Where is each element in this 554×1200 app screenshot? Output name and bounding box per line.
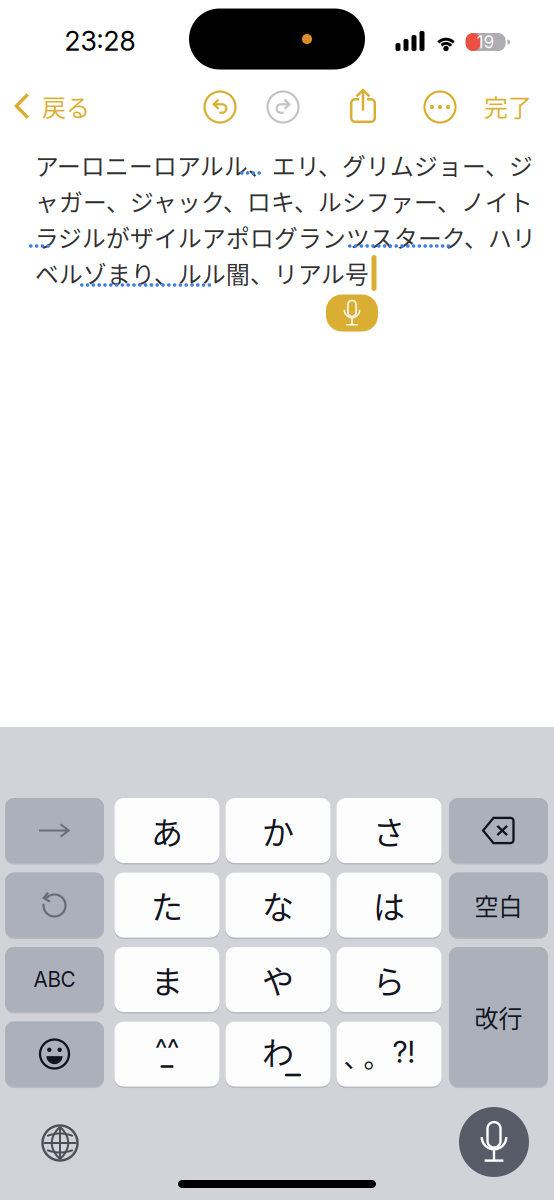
staticText: や: [262, 956, 294, 1003]
button[interactable]: わ: [225, 1021, 330, 1086]
button[interactable]: Kaomoji: [114, 1021, 219, 1086]
button[interactable]: More options: [415, 82, 464, 131]
button[interactable]: Next candidate: [5, 798, 104, 863]
staticText: ら: [373, 956, 405, 1003]
staticText: あ: [151, 807, 183, 854]
staticText: た: [151, 882, 183, 928]
staticText: 23:28: [64, 25, 135, 57]
staticText: ベルゾまり、ルル闇、リアル号: [35, 256, 369, 290]
staticText: わ: [262, 1028, 294, 1074]
button[interactable]: Redo: [258, 82, 307, 131]
staticText: な: [262, 882, 294, 928]
button[interactable]: や: [225, 947, 330, 1012]
staticText: 戻る: [42, 89, 90, 123]
staticText: ?!: [392, 1034, 415, 1070]
button[interactable]: Switch keyboard: [29, 1112, 90, 1173]
button[interactable]: さ: [336, 798, 441, 863]
staticText: ABC: [33, 967, 75, 992]
button[interactable]: ABC: [5, 947, 104, 1012]
button[interactable]: 完了: [472, 82, 544, 130]
button[interactable]: な: [225, 872, 330, 937]
staticText: 完了: [484, 89, 532, 123]
button[interactable]: 戻る: [2, 82, 102, 130]
staticText: ラジルがザイルアポログランツスターク、ハリ: [35, 220, 536, 254]
button[interactable]: Undo: [195, 82, 244, 131]
button[interactable]: 空白: [449, 872, 548, 937]
button[interactable]: 、。?!: [336, 1021, 441, 1086]
staticText: 。: [363, 1037, 390, 1075]
staticText: ^^: [155, 1032, 179, 1065]
button[interactable]: 改行: [449, 947, 548, 1086]
staticText: ャガー、ジャック、ロキ、ルシファー、ノイト: [35, 184, 533, 218]
button[interactable]: か: [225, 798, 330, 863]
button[interactable]: あ: [114, 798, 219, 863]
button[interactable]: Delete: [449, 798, 548, 863]
staticText: 19: [477, 31, 495, 52]
button[interactable]: Share: [341, 79, 387, 133]
staticText: は: [373, 882, 405, 928]
button[interactable]: ら: [336, 947, 441, 1012]
staticText: アーロニーロアルル、エリ、グリムジョー、ジ: [35, 148, 533, 182]
button[interactable]: は: [336, 872, 441, 937]
button[interactable]: Dictation: [326, 294, 378, 331]
staticText: さ: [373, 807, 405, 854]
button[interactable]: Emoji: [5, 1021, 104, 1086]
staticText: 、: [343, 1037, 370, 1075]
staticText: ま: [151, 956, 183, 1003]
button[interactable]: Dictation: [459, 1107, 529, 1177]
staticText: か: [262, 807, 294, 854]
button[interactable]: た: [114, 872, 219, 937]
staticText: 改行: [474, 999, 522, 1034]
button[interactable]: ま: [114, 947, 219, 1012]
button[interactable]: Undo: [5, 872, 104, 937]
staticText: 空白: [474, 888, 522, 922]
